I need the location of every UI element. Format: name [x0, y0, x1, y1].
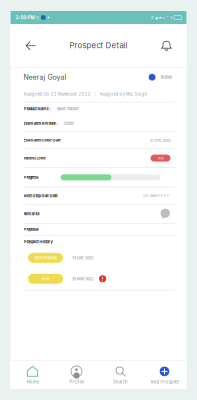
staticText: ✦: [45, 15, 50, 20]
button[interactable]: Profile: [54, 361, 98, 389]
staticText: Profile: [69, 379, 83, 385]
button[interactable]: Add Prospect: [142, 361, 186, 389]
staticText: Hot: [157, 156, 163, 160]
button[interactable]: Notifications: [153, 30, 179, 60]
staticText: Estimated Amount :: [23, 121, 57, 126]
button[interactable]: Back: [17, 30, 43, 60]
staticText: ⇵ ◢ ▰ ▴ ⌃ ≋: [151, 15, 173, 20]
button[interactable]: Search: [98, 361, 142, 389]
staticText: Progress: [23, 175, 38, 180]
staticText: 25 Nov 2022: [72, 276, 93, 281]
staticText: DD-MM-YYYY: [142, 193, 169, 198]
staticText: Prospect Detail: [69, 41, 127, 50]
staticText: Prospect History: [23, 239, 52, 244]
staticText: 07 Dec 2022: [149, 138, 170, 143]
staticText: Assigned On 23 November 2022: [23, 92, 90, 97]
staticText: Remarks: [23, 212, 39, 216]
staticText: Interest Level: [23, 156, 45, 160]
staticText: Sales Tracker: [56, 107, 78, 111]
staticText: Home: [26, 379, 38, 385]
staticText: Estimated Close Date: [23, 138, 60, 143]
staticText: ◷: [34, 15, 39, 20]
staticText: |: [94, 92, 95, 97]
staticText: Send Proposal: [34, 255, 57, 260]
staticText: Proposal: [23, 227, 38, 232]
staticText: Add Prospect: [150, 379, 178, 385]
staticText: Neeraj Goyal: [23, 73, 66, 81]
button[interactable]: Home: [10, 361, 54, 389]
staticText: Assigned by Nitu Singh: [99, 92, 147, 97]
staticText: Product Name :: [23, 107, 50, 111]
staticText: Search: [113, 379, 128, 385]
staticText: 3:00 PM: [15, 15, 34, 20]
staticText: 15 Dec 2022: [72, 255, 93, 260]
staticText: New: [41, 276, 49, 281]
staticText: Active: [160, 75, 171, 80]
staticText: Next Step Due Date: [23, 193, 57, 198]
staticText: 25000: [63, 121, 73, 126]
